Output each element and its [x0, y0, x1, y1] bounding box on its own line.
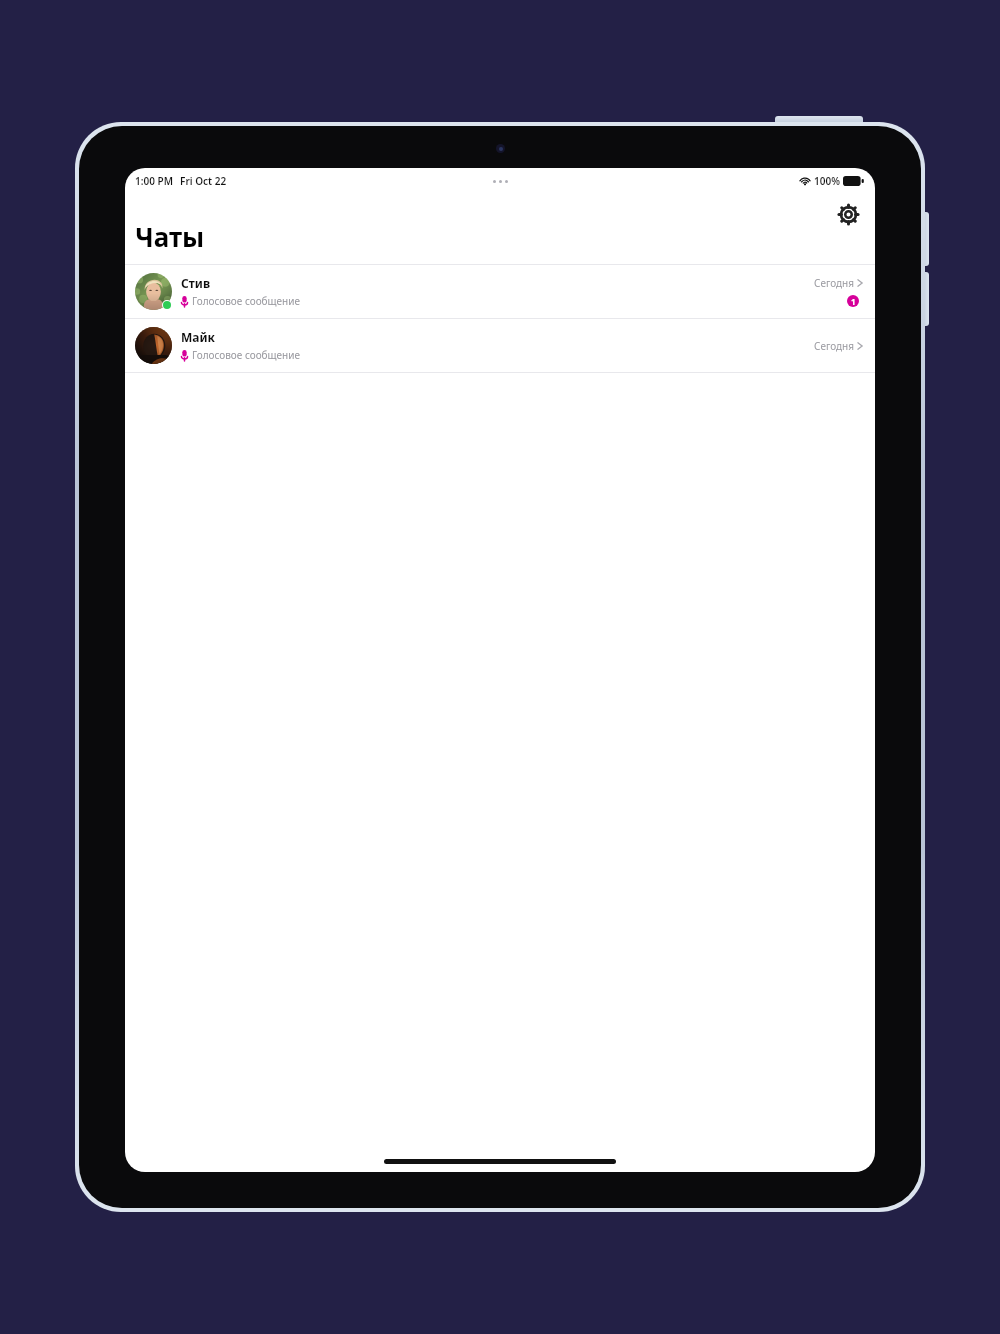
- staticText: Голосовое сообщение: [192, 294, 300, 308]
- staticText: 1: [851, 296, 856, 307]
- staticText: Майк: [181, 329, 215, 345]
- button[interactable]: Settings: [833, 199, 863, 229]
- staticText: Чаты: [135, 219, 205, 254]
- button[interactable]: Майк: [125, 319, 875, 372]
- staticText: Стив: [181, 275, 211, 291]
- button[interactable]: Стив: [125, 265, 875, 318]
- staticText: 1:00 PM: [135, 174, 173, 188]
- staticText: 100%: [814, 174, 840, 188]
- staticText: Сегодня: [814, 276, 855, 290]
- staticText: Голосовое сообщение: [192, 348, 300, 362]
- staticText: Сегодня: [814, 339, 855, 353]
- staticText: Fri Oct 22: [180, 174, 227, 188]
